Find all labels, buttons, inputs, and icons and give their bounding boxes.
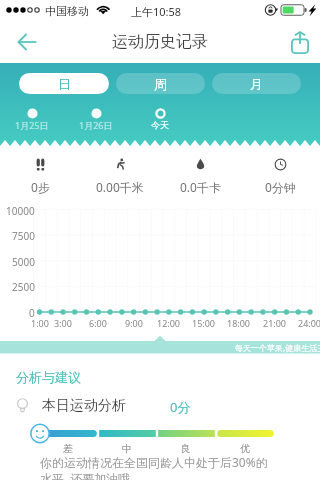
staticText: 1月26日 <box>79 119 113 131</box>
staticText: 0步 <box>31 179 50 195</box>
staticText: 日 <box>58 76 71 92</box>
staticText: 差 <box>63 442 73 455</box>
staticText: 中国移动 <box>45 4 89 18</box>
staticText: 9:00 <box>125 317 143 329</box>
staticText: 1月25日 <box>15 119 49 131</box>
staticText: 1:00 <box>31 317 49 329</box>
staticText: 0分钟 <box>265 179 296 195</box>
staticText: 21:00 <box>263 317 287 329</box>
staticText: 月 <box>250 76 263 92</box>
staticText: 3:00 <box>54 317 72 329</box>
staticText: 今天 <box>151 119 169 130</box>
button[interactable]: Share <box>281 23 319 61</box>
button[interactable]: Back <box>8 23 46 61</box>
button[interactable]: 0分钟 <box>240 156 320 195</box>
staticText: 优 <box>240 442 250 455</box>
staticText: 2500 <box>12 280 35 294</box>
staticText: 中 <box>122 442 132 455</box>
staticText: 0分 <box>170 398 191 416</box>
staticText: 分析与建议 <box>16 369 81 385</box>
button[interactable]: 周 <box>116 73 205 94</box>
staticText: 5000 <box>12 255 35 269</box>
staticText: 24:00 <box>298 317 320 329</box>
staticText: 运动历史记录 <box>112 32 208 52</box>
staticText: 每天一个苹果,健康生活三十年 <box>235 342 320 353</box>
staticText: 18:00 <box>227 317 251 329</box>
staticText: 本日运动分析 <box>42 397 126 415</box>
staticText: 你的运动情况在全国同龄人中处于后30%的 水平, 还要加油哦 <box>40 454 268 480</box>
staticText: 6:00 <box>89 317 107 329</box>
button[interactable]: 月 <box>212 73 301 94</box>
staticText: 周 <box>154 76 167 92</box>
button[interactable]: 1月26日 <box>64 108 128 131</box>
staticText: 7500 <box>12 229 35 243</box>
button[interactable]: 1月25日 <box>0 108 64 131</box>
staticText: 上午10:58 <box>131 4 182 19</box>
button[interactable]: 0步 <box>0 156 80 195</box>
staticText: 12:00 <box>157 317 181 329</box>
staticText: 10000 <box>6 204 35 218</box>
button[interactable]: 今天 <box>128 108 192 130</box>
button[interactable]: 0.0千卡 <box>160 156 240 195</box>
staticText: 良 <box>181 442 191 455</box>
button[interactable]: 日 <box>19 73 109 94</box>
staticText: 0.0千卡 <box>180 179 221 195</box>
staticText: 0.00千米 <box>96 179 144 195</box>
staticText: 15:00 <box>192 317 216 329</box>
staticText: 0 <box>29 306 35 320</box>
button[interactable]: 0.00千米 <box>80 156 160 195</box>
